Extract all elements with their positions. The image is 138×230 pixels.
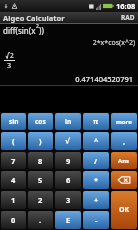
button[interactable]: 1 (1, 191, 26, 209)
staticText: RAD (121, 13, 135, 22)
button[interactable]: / (83, 152, 109, 169)
button[interactable]: 7 (1, 152, 26, 169)
staticText: * (94, 175, 99, 185)
staticText: √ (65, 137, 71, 146)
button[interactable]: more (111, 113, 137, 130)
button[interactable]: 3 (55, 191, 81, 209)
staticText: 16:08 (116, 1, 136, 11)
button[interactable]: 6 (55, 171, 81, 189)
staticText: diff(sin(x (3, 25, 36, 36)
staticText: cos (35, 117, 46, 126)
staticText: 8 (38, 156, 43, 166)
staticText: 9 (66, 156, 71, 166)
staticText: )) (39, 25, 44, 36)
button[interactable]: ( (1, 132, 26, 150)
staticText: 2*x*cos(x^2) (0, 38, 135, 48)
button[interactable]: sin (1, 113, 26, 130)
button[interactable]: 5 (28, 171, 53, 189)
button[interactable]: OK (111, 191, 137, 229)
staticText: . (39, 215, 42, 225)
staticText: sin (9, 117, 19, 126)
staticText: 3 (7, 61, 12, 71)
staticText: 7 (11, 156, 16, 166)
button[interactable]: Ans (111, 152, 137, 169)
staticText: 6 (66, 175, 71, 185)
button[interactable]: cos (28, 113, 53, 130)
button[interactable]: 8 (28, 152, 53, 169)
staticText: OK (119, 205, 130, 215)
staticText: π (93, 117, 99, 127)
staticText: Algeo Calculator (3, 13, 65, 23)
staticText: 2 (10, 51, 14, 60)
button[interactable]: ^ (83, 132, 109, 150)
staticText: , (123, 136, 126, 146)
staticText: / (94, 156, 98, 166)
button[interactable]: + (83, 191, 109, 209)
button[interactable]: , (111, 132, 137, 150)
button[interactable]: * (83, 171, 109, 189)
button[interactable]: E (55, 211, 81, 229)
staticText: E (66, 215, 71, 225)
staticText: - (95, 215, 98, 225)
button[interactable]: 9 (55, 152, 81, 169)
button[interactable]: 2 (28, 191, 53, 209)
button[interactable]: 0 (1, 211, 26, 229)
button[interactable]: ) (28, 132, 53, 150)
button[interactable]: . (28, 211, 53, 229)
button[interactable]: ln (55, 113, 81, 130)
button[interactable]: 4 (1, 171, 26, 189)
button[interactable]: √ (55, 132, 81, 150)
button[interactable]: π (83, 113, 109, 130)
staticText: 2 (36, 23, 39, 30)
staticText: ) (39, 136, 42, 146)
staticText: ( (12, 136, 15, 146)
staticText: 5 (38, 175, 43, 185)
staticText: ln (65, 117, 72, 126)
staticText: 4 (11, 175, 16, 185)
staticText: + (94, 195, 99, 205)
staticText: 0.471404520791 (0, 74, 133, 84)
staticText: Ans (118, 157, 130, 165)
button[interactable]: Delete (111, 171, 137, 189)
staticText: 3 (66, 195, 71, 205)
button[interactable]: - (83, 211, 109, 229)
staticText: 0 (11, 215, 16, 225)
staticText: ^ (94, 136, 99, 146)
staticText: 1 (11, 195, 16, 205)
staticText: 2 (38, 195, 43, 205)
staticText: more (116, 118, 132, 126)
